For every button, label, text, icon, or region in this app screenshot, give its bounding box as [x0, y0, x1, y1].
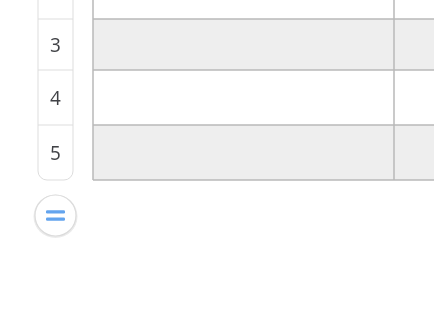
button[interactable]: Select row 4: [38, 70, 73, 125]
button[interactable]: [394, 19, 434, 70]
button[interactable]: [394, 125, 434, 180]
button[interactable]: Insert function: [33, 193, 78, 238]
button[interactable]: Select row 3: [38, 19, 73, 70]
button[interactable]: [93, 125, 394, 180]
button[interactable]: [394, 70, 434, 125]
button[interactable]: [93, 19, 394, 70]
button[interactable]: Select row 5: [38, 125, 73, 180]
button[interactable]: [93, 70, 394, 125]
